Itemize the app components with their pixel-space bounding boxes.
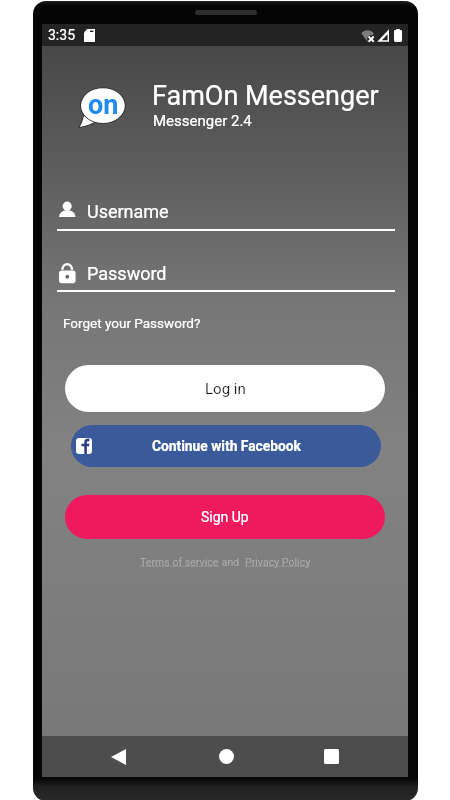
staticText: Terms of service — [140, 556, 219, 568]
staticText: Username — [87, 201, 169, 222]
staticText: Privacy Policy — [245, 556, 311, 568]
button[interactable]: Home — [204, 736, 248, 777]
button[interactable]: Back — [96, 736, 140, 777]
button[interactable]: Terms of service — [140, 556, 219, 568]
button[interactable]: Log in — [65, 365, 385, 412]
button[interactable]: Continue with Facebook — [71, 425, 381, 467]
button[interactable]: Username — [59, 196, 398, 226]
staticText: Continue with Facebook — [152, 438, 301, 454]
staticText: Forget your Password? — [63, 315, 201, 331]
staticText: and — [219, 556, 245, 568]
staticText: Sign Up — [201, 509, 249, 525]
staticText: FamOn Messenger — [152, 80, 379, 112]
button[interactable]: Privacy Policy — [245, 556, 311, 568]
staticText: Password — [87, 263, 167, 284]
button[interactable]: Forget your Password? — [61, 313, 203, 333]
button[interactable]: Recent apps — [309, 736, 353, 777]
staticText: Messenger 2.4 — [153, 112, 252, 130]
staticText: 3:35 — [48, 27, 75, 43]
staticText: on — [88, 89, 119, 121]
button[interactable]: Sign Up — [65, 495, 385, 539]
staticText: Log in — [205, 380, 246, 398]
button[interactable]: Password — [59, 258, 398, 288]
